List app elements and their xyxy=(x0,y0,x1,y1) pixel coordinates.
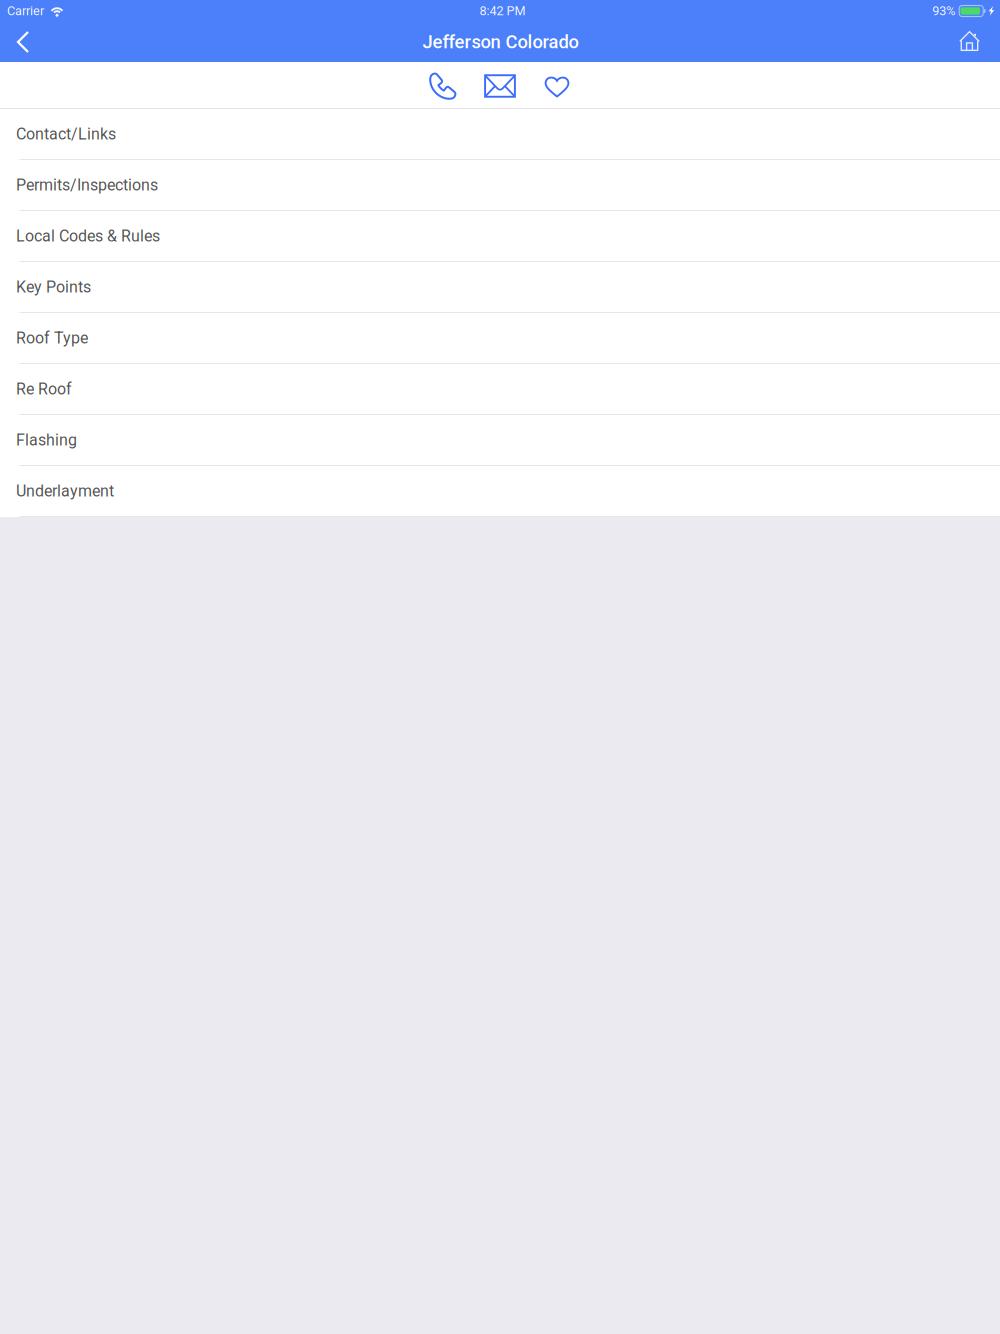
staticText: Jefferson Colorado xyxy=(422,31,578,53)
button[interactable]: Roof Type xyxy=(0,313,1000,364)
staticText: Permits/Inspections xyxy=(16,176,158,194)
button[interactable]: Back xyxy=(0,22,44,62)
button[interactable]: Favorite xyxy=(528,62,585,108)
staticText: Flashing xyxy=(16,431,77,449)
staticText: Roof Type xyxy=(16,329,88,347)
button[interactable]: Contact/Links xyxy=(0,109,1000,160)
staticText: Carrier xyxy=(7,4,44,18)
button[interactable]: Underlayment xyxy=(0,466,1000,517)
staticText: 8:42 PM xyxy=(479,4,525,18)
staticText: Contact/Links xyxy=(16,125,116,143)
button[interactable]: Key Points xyxy=(0,262,1000,313)
button[interactable]: Email xyxy=(471,62,528,108)
staticText: Key Points xyxy=(16,278,91,296)
button[interactable]: Re Roof xyxy=(0,364,1000,415)
staticText: Underlayment xyxy=(16,482,114,500)
button[interactable]: Local Codes & Rules xyxy=(0,211,1000,262)
staticText: 93% xyxy=(932,4,955,18)
button[interactable]: Call xyxy=(414,62,471,108)
button[interactable]: Home xyxy=(945,22,1000,62)
staticText: Re Roof xyxy=(16,380,72,398)
button[interactable]: Flashing xyxy=(0,415,1000,466)
staticText: Local Codes & Rules xyxy=(16,227,160,245)
button[interactable]: Permits/Inspections xyxy=(0,160,1000,211)
